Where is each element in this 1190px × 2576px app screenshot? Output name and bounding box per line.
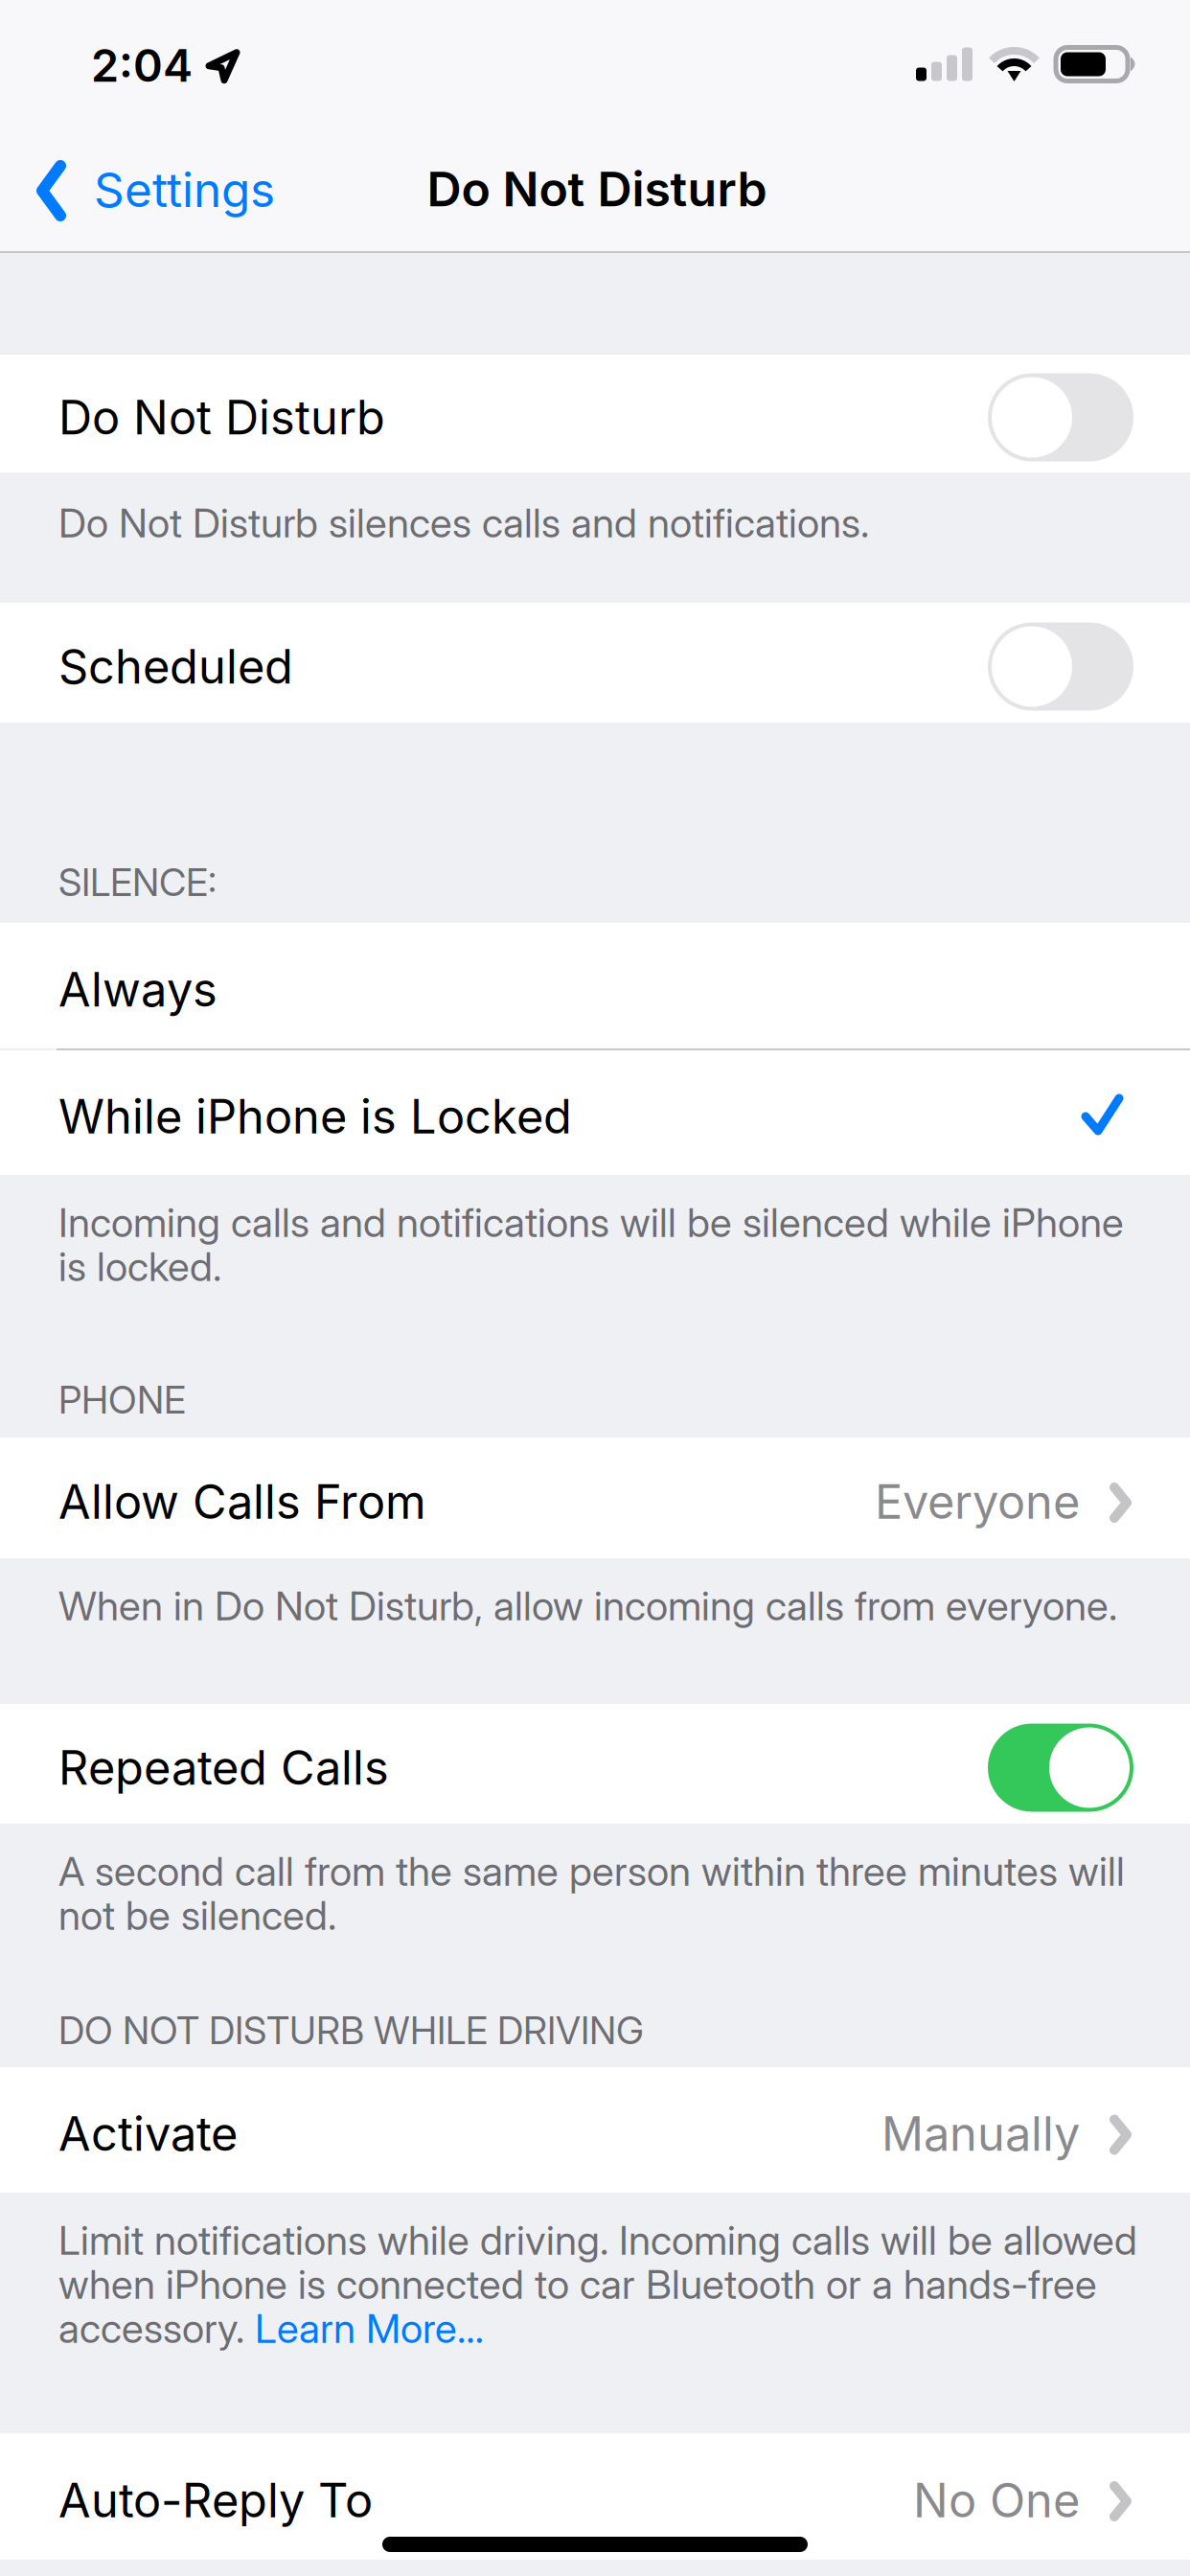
button[interactable]: Settings [0,121,298,247]
button[interactable]: Auto-Reply To [0,2433,1190,2560]
staticText: not be silenced. [58,1891,336,1939]
staticText: SILENCE: [58,860,217,905]
button[interactable]: Repeated Calls [0,1704,1190,1824]
staticText: 2:04 [91,38,193,92]
staticText: Settings [94,161,275,218]
button[interactable]: Allow Calls From [0,1437,1190,1558]
staticText: Activate [58,2106,238,2162]
button[interactable]: Scheduled [0,603,1190,723]
button[interactable]: Activate [0,2067,1190,2193]
staticText: Do Not Disturb [427,160,767,218]
staticText: Auto-Reply To [58,2472,373,2529]
button[interactable]: While iPhone is Locked [0,1050,1190,1175]
staticText: Limit notifications while driving. Incom… [58,2216,1137,2264]
staticText: is locked. [58,1242,221,1291]
staticText: Always [58,961,217,1018]
staticText: Everyone [875,1474,1080,1530]
staticText: Do Not Disturb silences calls and notifi… [58,498,869,547]
staticText: DO NOT DISTURB WHILE DRIVING [58,2008,644,2053]
staticText: PHONE [58,1377,186,1423]
staticText: Manually [881,2106,1080,2162]
staticText: accessory. [58,2304,255,2353]
staticText: When in Do Not Disturb, allow incoming c… [58,1581,1117,1630]
staticText: Allow Calls From [58,1474,426,1530]
staticText: A second call from the same person withi… [58,1847,1125,1895]
staticText: Scheduled [58,638,293,695]
staticText: Learn More… [255,2304,484,2353]
staticText: No One [913,2472,1080,2529]
staticText: when iPhone is connected to car Bluetoot… [58,2260,1097,2308]
button[interactable]: Learn More… [255,2304,484,2353]
button[interactable]: Always [0,923,1190,1048]
staticText: Repeated Calls [58,1739,389,1796]
staticText: Do Not Disturb [58,389,385,446]
button[interactable]: Do Not Disturb [0,355,1190,472]
staticText: Incoming calls and notifications will be… [58,1198,1124,1247]
staticText: While iPhone is Locked [58,1088,572,1145]
